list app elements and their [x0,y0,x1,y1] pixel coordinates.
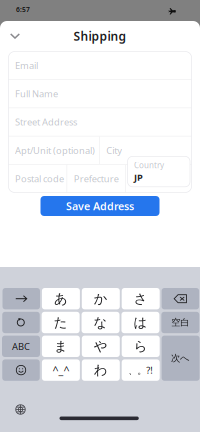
button[interactable]: ま [42,336,80,357]
staticText: JP [134,171,143,183]
staticText: か [94,290,108,307]
button[interactable]: Apt/Unit (optional) [8,136,99,164]
button[interactable]: さ [122,288,160,309]
button[interactable]: あ [42,288,80,309]
staticText: Postal code [15,172,64,185]
button[interactable]: た [42,312,80,333]
staticText: 次へ [171,352,190,364]
staticText: 6:57 [16,5,30,14]
staticText: Street Address [15,116,77,128]
button[interactable]: Full Name [8,80,191,107]
button[interactable]: Street Address [8,108,191,136]
button[interactable]: か [82,288,120,309]
button[interactable] [2,312,40,333]
button[interactable]: Dismiss [3,27,27,45]
staticText: 、。?! [128,364,153,376]
button[interactable] [2,288,40,309]
button[interactable]: わ [82,359,120,381]
button[interactable]: ^_^ [42,359,80,381]
staticText: わ [94,362,108,378]
button[interactable]: 次へ [162,336,200,381]
button[interactable]: や [82,336,120,357]
staticText: 空白 [171,317,189,328]
staticText: ^_^ [52,363,69,377]
button[interactable]: ABC [2,336,40,357]
staticText: Prefecture [74,172,119,185]
button[interactable]: な [81,312,119,333]
staticText: Country [134,160,164,170]
button[interactable]: Save Address [40,196,159,216]
button[interactable]: Email [8,52,191,79]
staticText: ま [54,338,68,354]
staticText: Full Name [15,87,58,100]
staticText: や [94,338,108,354]
staticText: Email [15,59,38,72]
button[interactable]: ら [122,336,160,357]
button[interactable]: 空白 [161,312,199,333]
button[interactable]: は [121,312,159,333]
staticText: Shipping [73,28,126,44]
button[interactable]: Next keyboard [9,400,31,418]
staticText: な [93,314,107,331]
staticText: は [133,314,147,331]
button[interactable] [2,359,40,381]
staticText: さ [134,290,148,307]
button[interactable]: Country [126,165,191,192]
staticText: た [54,314,68,331]
staticText: Country [132,172,168,185]
button[interactable]: Country [128,156,190,187]
button[interactable] [162,288,199,309]
staticText: ら [134,338,148,354]
staticText: Apt/Unit (optional) [15,144,95,156]
staticText: あ [54,290,68,307]
staticText: City [106,144,122,156]
button[interactable]: City [100,136,191,164]
button[interactable]: 、。?! [122,359,160,381]
button[interactable]: Prefecture [67,165,125,192]
button[interactable]: Postal code [8,165,66,192]
staticText: Save Address [66,199,134,213]
staticText: ABC [12,340,30,352]
